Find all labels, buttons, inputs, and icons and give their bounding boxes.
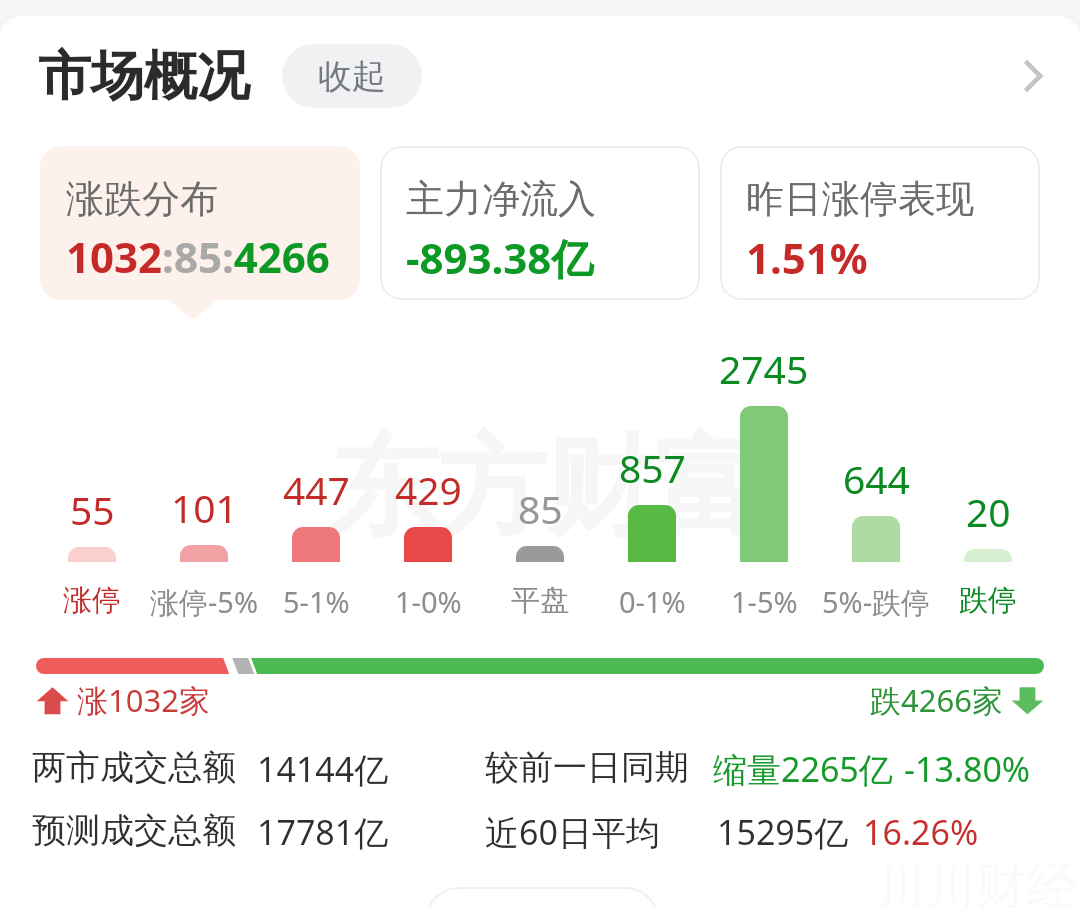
staticText: 447 bbox=[283, 463, 350, 516]
staticText: 跌4266家 bbox=[870, 679, 1003, 721]
staticText: 0-1% bbox=[619, 582, 686, 621]
staticText: 644 bbox=[843, 452, 910, 505]
staticText: 涨1032家 bbox=[77, 679, 210, 721]
staticText: 平盘 bbox=[511, 582, 569, 619]
staticText: 1-0% bbox=[395, 582, 462, 621]
staticText: 跌停 bbox=[959, 582, 1017, 619]
staticText: 55 bbox=[70, 483, 115, 536]
staticText: 1.51% bbox=[746, 229, 868, 286]
staticText: 市场概况 bbox=[38, 43, 250, 110]
staticText: 两市成交总额 bbox=[32, 746, 236, 789]
staticText: 5%-跌停 bbox=[822, 582, 931, 622]
staticText: -893.38亿 bbox=[406, 229, 594, 286]
staticText: 较前一日同期 bbox=[485, 746, 689, 789]
button[interactable]: 展开更多 bbox=[1000, 44, 1064, 108]
staticText: 缩量2265亿 bbox=[713, 746, 893, 792]
staticText: 1-5% bbox=[731, 582, 798, 621]
button[interactable]: 主力净流入 bbox=[380, 146, 700, 300]
staticText: 15295亿 bbox=[717, 809, 849, 855]
staticText: 2745 bbox=[719, 342, 809, 395]
staticText: 16.26% bbox=[863, 809, 979, 855]
staticText: 近60日平均 bbox=[485, 809, 660, 855]
button[interactable]: 更多操作 bbox=[426, 887, 658, 908]
staticText: 20 bbox=[966, 485, 1011, 538]
button[interactable]: 收起 bbox=[282, 44, 422, 108]
staticText: -13.80% bbox=[904, 746, 1031, 792]
staticText: 收起 bbox=[318, 55, 386, 98]
staticText: 5-1% bbox=[283, 582, 350, 621]
staticText: 14144亿 bbox=[257, 746, 389, 792]
staticText: 429 bbox=[395, 463, 462, 516]
staticText: 主力净流入 bbox=[406, 175, 596, 223]
staticText: 涨停 bbox=[63, 582, 121, 619]
staticText: 85 bbox=[518, 482, 563, 535]
staticText: 预测成交总额 bbox=[32, 809, 236, 852]
staticText: 昨日涨停表现 bbox=[746, 175, 974, 223]
staticText: 857 bbox=[619, 441, 686, 494]
staticText: 101 bbox=[171, 481, 238, 534]
staticText: 17781亿 bbox=[257, 809, 389, 855]
staticText: 涨跌分布 bbox=[66, 175, 218, 223]
button[interactable]: 昨日涨停表现 bbox=[720, 146, 1040, 300]
staticText: 涨停-5% bbox=[150, 582, 259, 622]
staticText: 东方财富 bbox=[330, 420, 762, 556]
staticText: 1032:85:4266 bbox=[66, 228, 330, 285]
button[interactable]: 涨跌分布 bbox=[40, 146, 360, 300]
